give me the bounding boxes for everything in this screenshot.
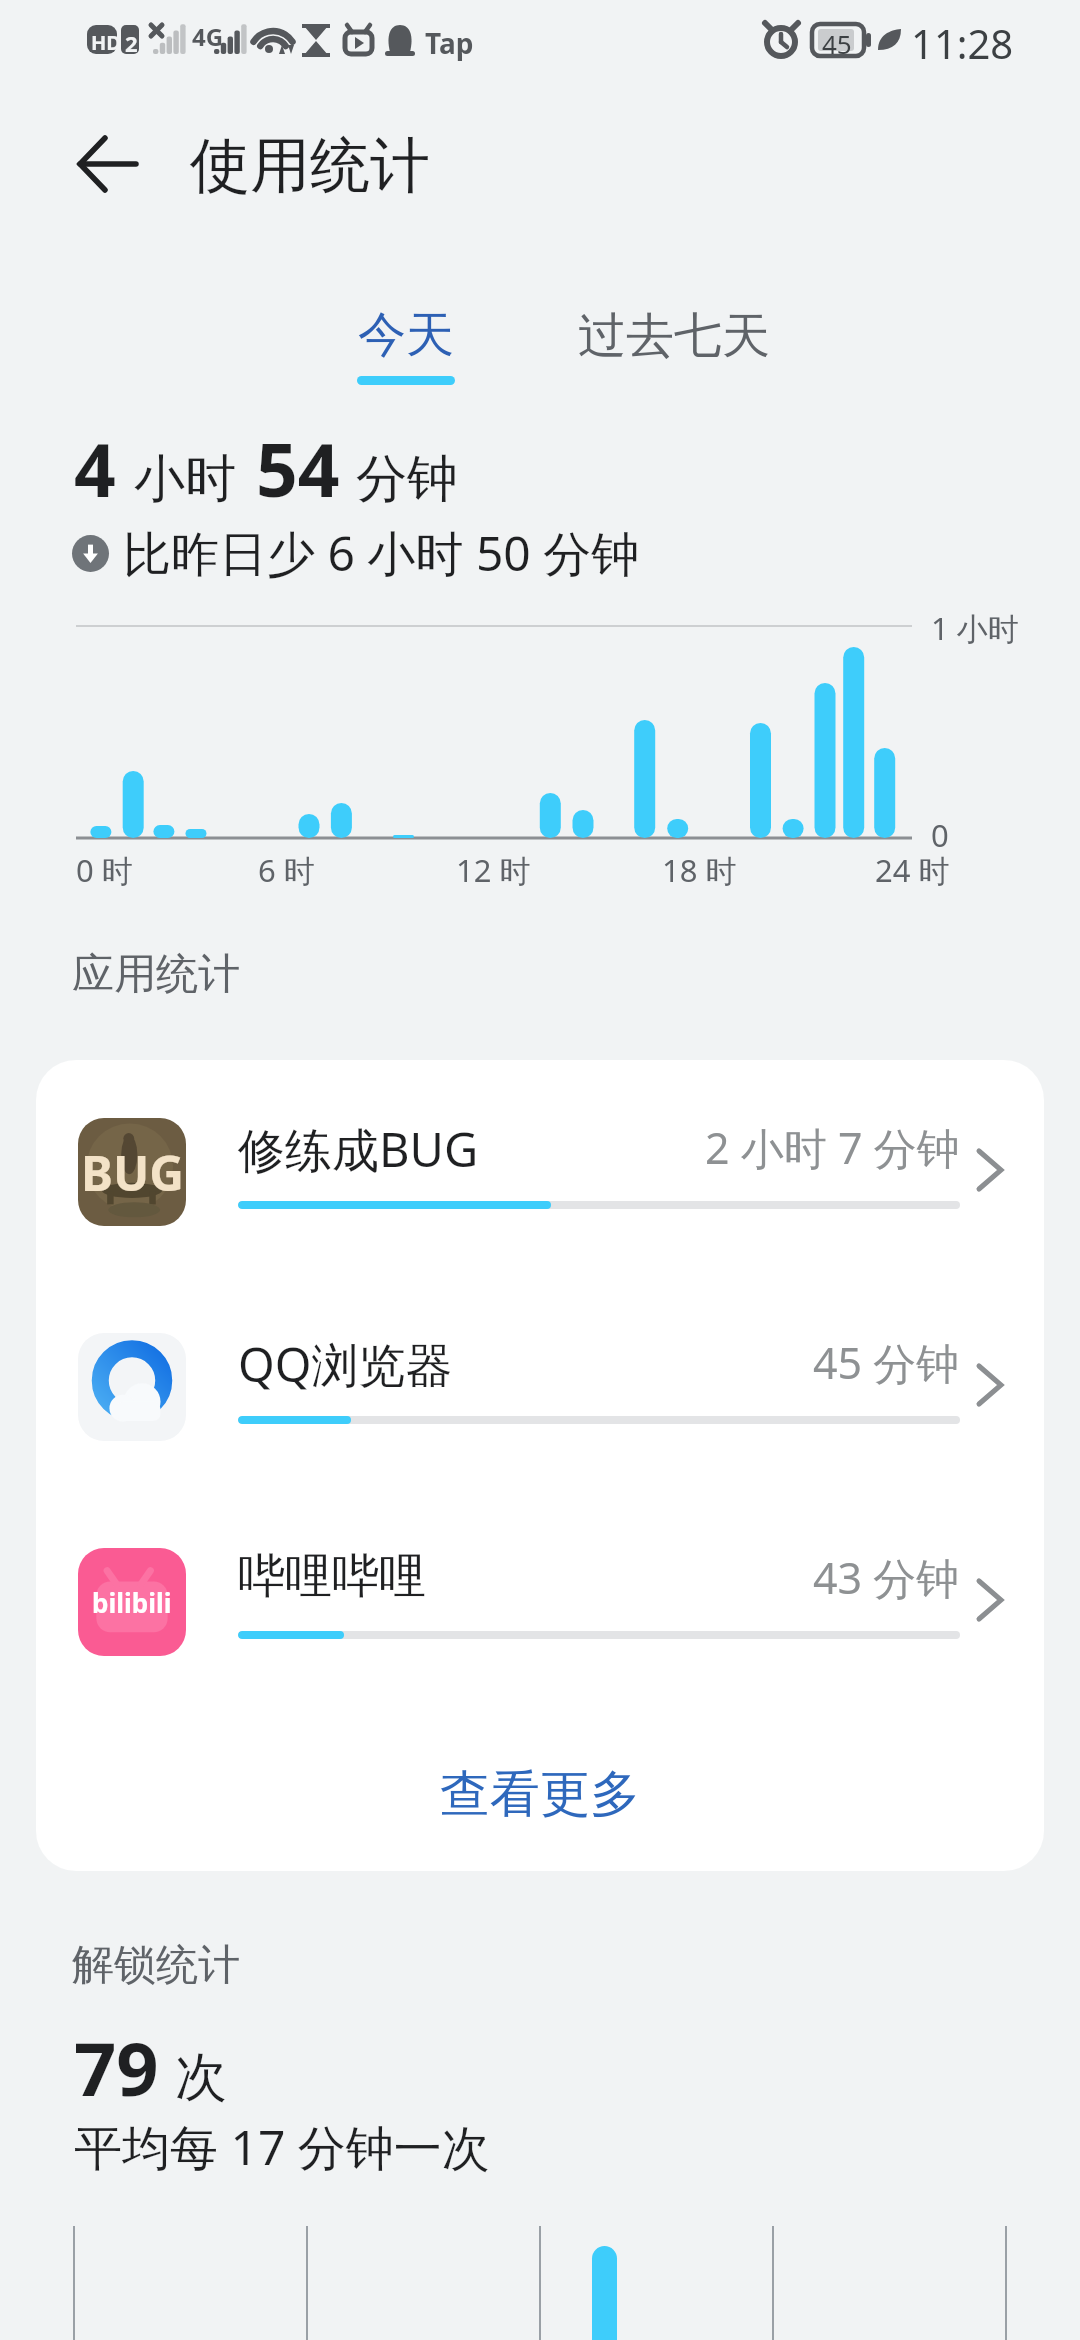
- staticText: bilibili: [92, 1585, 172, 1620]
- button[interactable]: BUG: [36, 1078, 1044, 1268]
- staticText: 分钟: [356, 447, 458, 511]
- staticText: 4G: [192, 20, 224, 53]
- staticText: 今天: [358, 305, 454, 365]
- staticText: Tap: [425, 24, 474, 62]
- button[interactable]: Back: [60, 120, 156, 210]
- staticText: 次: [175, 2045, 227, 2111]
- staticText: 79: [74, 2017, 159, 2118]
- staticText: 比昨日少 6 小时 50 分钟: [123, 520, 640, 586]
- staticText: 0: [931, 814, 949, 856]
- staticText: 6 时: [258, 849, 315, 891]
- staticText: 使用统计: [190, 128, 430, 204]
- staticText: 修练成BUG: [238, 1117, 479, 1181]
- staticText: 54: [256, 419, 340, 518]
- staticText: HD: [91, 29, 121, 56]
- staticText: BUG: [81, 1140, 184, 1205]
- staticText: 平均每 17 分钟一次: [74, 2114, 490, 2180]
- staticText: 解锁统计: [72, 1939, 240, 1992]
- button[interactable]: 今天: [307, 285, 505, 405]
- button[interactable]: 过去七天: [528, 285, 820, 405]
- staticText: 查看更多: [440, 1763, 640, 1826]
- staticText: 12 时: [456, 849, 531, 891]
- staticText: 18 时: [662, 849, 737, 891]
- staticText: 4: [74, 419, 116, 518]
- staticText: 应用统计: [72, 948, 240, 1001]
- staticText: 过去七天: [578, 306, 770, 366]
- staticText: 哔哩哔哩: [238, 1547, 426, 1606]
- staticText: 45 分钟: [813, 1333, 960, 1392]
- staticText: 小时: [134, 447, 236, 511]
- staticText: 43 分钟: [813, 1548, 960, 1607]
- staticText: QQ浏览器: [238, 1332, 453, 1396]
- button[interactable]: 查看更多: [36, 1730, 1044, 1858]
- staticText: 24 时: [875, 849, 950, 891]
- button[interactable]: bilibili: [36, 1508, 1044, 1698]
- staticText: 1 小时: [931, 607, 1019, 649]
- button[interactable]: QQ浏览器: [36, 1293, 1044, 1483]
- staticText: 45: [822, 26, 852, 61]
- staticText: 2 小时 7 分钟: [705, 1118, 960, 1177]
- staticText: 0 时: [76, 849, 133, 891]
- staticText: 2: [125, 28, 138, 58]
- staticText: 11:28: [911, 16, 1014, 70]
